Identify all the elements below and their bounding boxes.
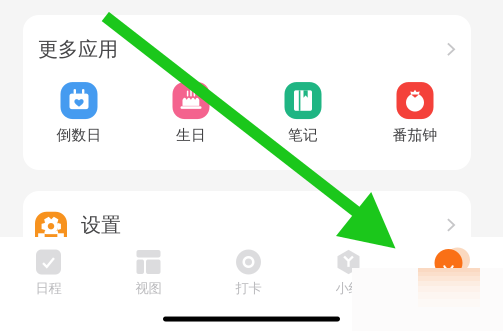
staticText: 小组 — [335, 280, 361, 296]
staticText: 番茄钟 — [392, 126, 437, 144]
staticText: 笔记 — [288, 126, 318, 144]
button[interactable]: Profile — [398, 237, 498, 299]
button[interactable]: 番茄钟 — [359, 84, 471, 143]
staticText: 倒数日 — [56, 126, 101, 144]
button[interactable]: 视图 — [98, 237, 198, 299]
button[interactable]: 小组 — [298, 237, 398, 299]
button[interactable]: 笔记 — [247, 84, 359, 143]
staticText: 生日 — [176, 126, 206, 144]
button[interactable]: 设置 — [23, 191, 471, 259]
staticText: 视图 — [135, 280, 161, 296]
button[interactable]: 日程 — [0, 237, 98, 299]
staticText: 设置 — [81, 213, 121, 237]
staticText: 更多应用 — [38, 37, 118, 62]
button[interactable]: 生日 — [135, 84, 247, 143]
staticText: 打卡 — [235, 280, 261, 296]
button[interactable]: 打卡 — [198, 237, 298, 299]
staticText: 日程 — [35, 280, 61, 296]
button[interactable]: 倒数日 — [23, 84, 135, 143]
